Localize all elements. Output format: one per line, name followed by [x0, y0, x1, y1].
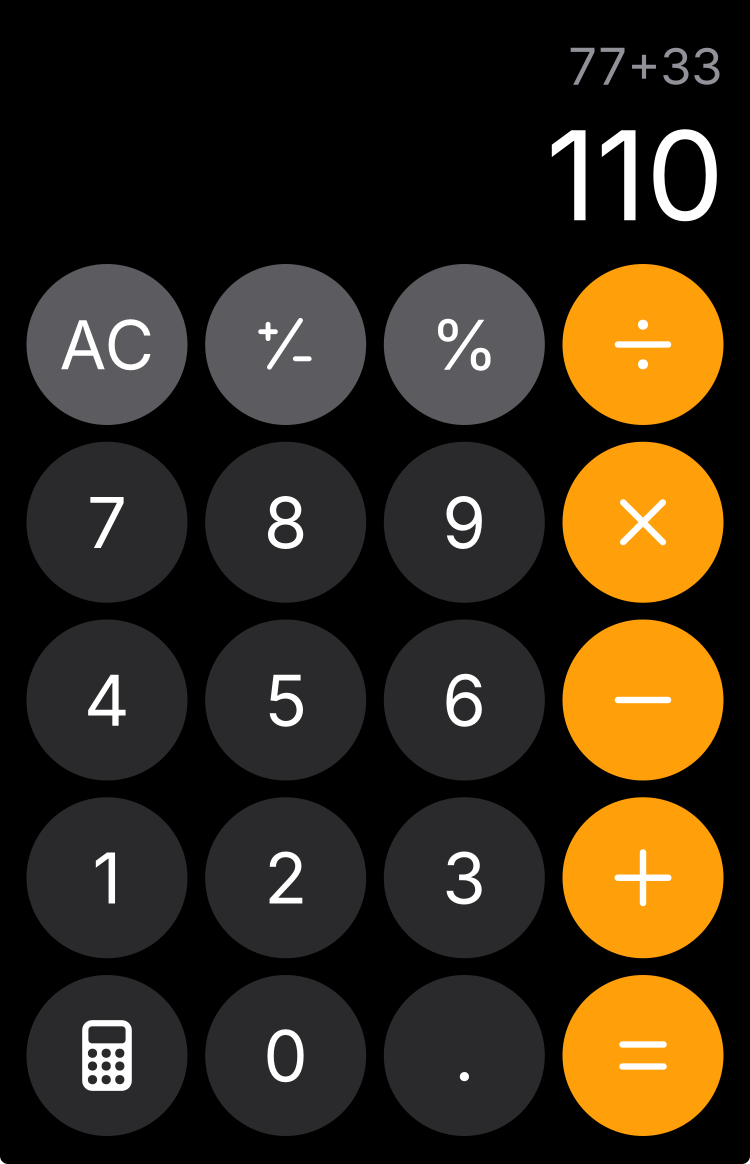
staticText: 77+33	[568, 36, 722, 97]
staticText: 2	[264, 835, 307, 920]
button[interactable]: 8	[205, 442, 366, 603]
button[interactable]: Equals	[562, 975, 723, 1136]
button[interactable]: Multiply	[562, 442, 723, 603]
staticText: 8	[264, 479, 308, 565]
button[interactable]: 4	[26, 619, 187, 780]
staticText: 3	[442, 835, 486, 920]
staticText: AC	[59, 303, 154, 386]
button[interactable]: 2	[205, 797, 366, 958]
button[interactable]: Toggle sign	[205, 264, 366, 425]
button[interactable]: 1	[26, 797, 187, 958]
staticText: 9	[442, 479, 486, 565]
button[interactable]: 0	[205, 975, 366, 1136]
button[interactable]: Add	[562, 797, 723, 958]
staticText: 4	[84, 657, 130, 743]
button[interactable]: Calculator	[26, 975, 187, 1136]
staticText: .	[454, 1013, 474, 1098]
button[interactable]: AC	[26, 264, 187, 425]
button[interactable]: 3	[384, 797, 545, 958]
button[interactable]: Divide	[562, 264, 723, 425]
staticText: 5	[264, 657, 307, 743]
staticText: 110	[546, 100, 724, 250]
button[interactable]: 5	[205, 619, 366, 780]
button[interactable]: 7	[26, 442, 187, 603]
staticText: 0	[263, 1013, 308, 1098]
button[interactable]: 6	[384, 619, 545, 780]
button[interactable]: 9	[384, 442, 545, 603]
staticText: %	[430, 303, 498, 386]
button[interactable]: Subtract	[562, 619, 723, 780]
button[interactable]: .	[384, 975, 545, 1136]
button[interactable]: %	[384, 264, 545, 425]
staticText: 7	[87, 479, 127, 565]
staticText: 6	[442, 657, 486, 743]
staticText: 1	[92, 835, 121, 920]
